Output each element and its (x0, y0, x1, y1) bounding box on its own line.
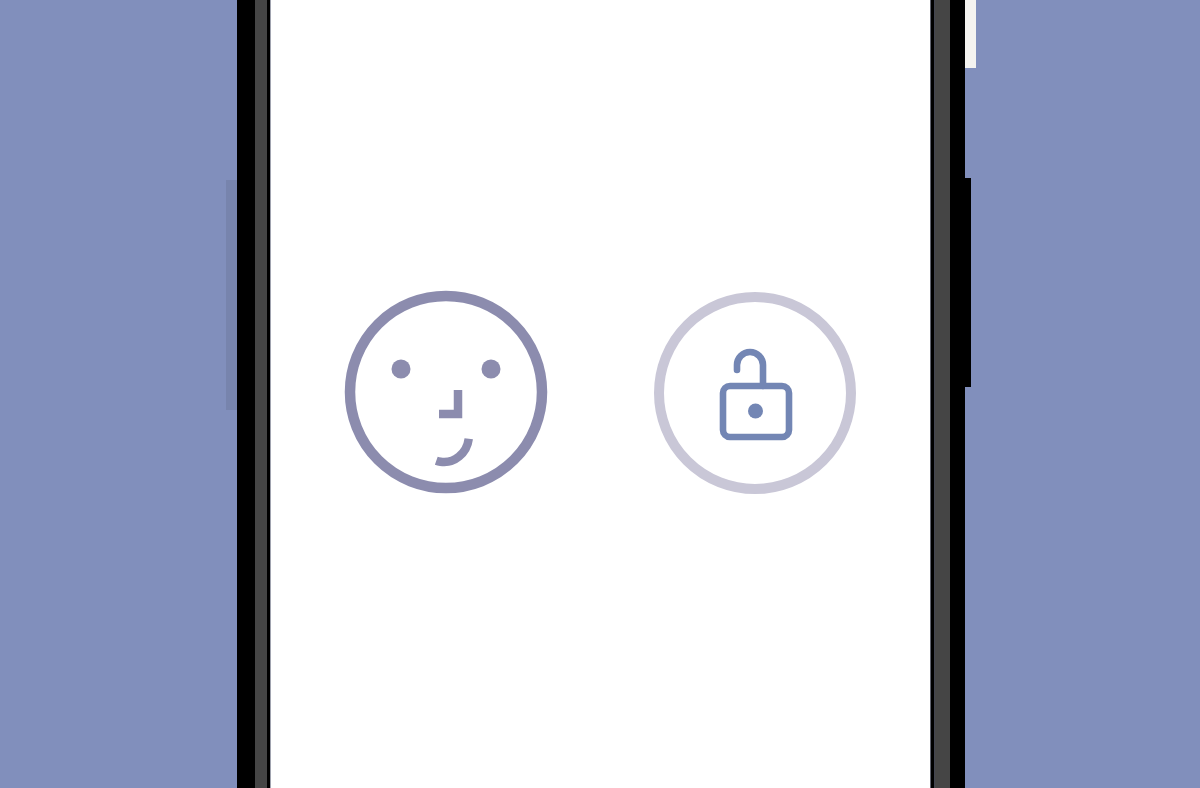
button[interactable]: Face (350, 296, 542, 488)
button[interactable]: Unlock (659, 297, 851, 489)
